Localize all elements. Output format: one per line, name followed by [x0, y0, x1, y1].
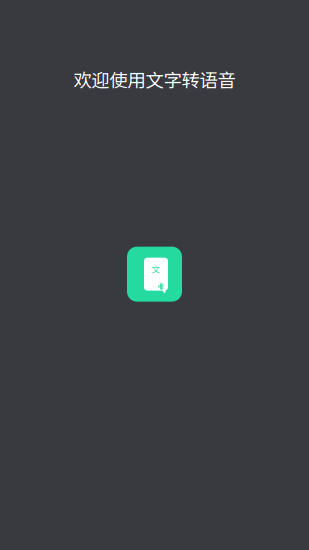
staticText: 欢迎使用文字转语音: [73, 66, 235, 93]
staticText: 文: [151, 263, 160, 275]
